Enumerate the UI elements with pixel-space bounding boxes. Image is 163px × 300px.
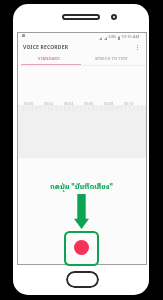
staticText: 34% (108, 34, 117, 40)
button[interactable]: Home (66, 271, 99, 288)
staticText: 00:04 (64, 101, 74, 106)
button[interactable]: More options (132, 40, 143, 54)
button[interactable]: SPEECH TO TEXT (79, 53, 144, 63)
staticText: 10:15 AM (121, 34, 140, 40)
staticText: 00:00 (24, 101, 34, 106)
staticText: VOICE RECORDER (23, 44, 69, 51)
staticText: STANDARD (38, 56, 61, 61)
staticText: 00:06 (84, 101, 94, 106)
staticText: SPEECH TO TEXT (95, 56, 129, 61)
staticText: กดปุ่ม "บันทึกเสียง" (50, 181, 113, 192)
button[interactable]: STANDARD (17, 53, 82, 63)
staticText: 00:08 (104, 101, 114, 106)
button[interactable]: Record (66, 232, 97, 263)
staticText: 00:10 (124, 101, 134, 106)
staticText: 00:02 (44, 101, 54, 106)
